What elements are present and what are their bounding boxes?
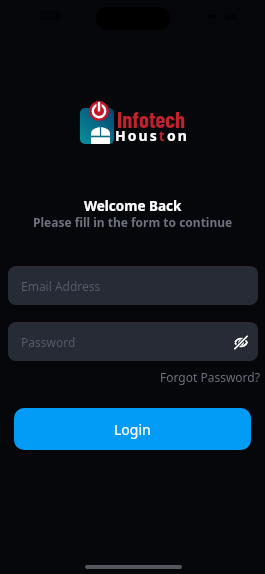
staticText: Email Address (21, 278, 101, 294)
button[interactable]: Password (8, 322, 258, 361)
staticText: Password (21, 334, 76, 350)
staticText: Forgot Password? (160, 369, 260, 385)
button[interactable]: Forgot Password? (160, 369, 260, 385)
staticText: Infotech (117, 105, 186, 132)
staticText: Login (114, 420, 151, 439)
staticText: Welcome Back (84, 197, 182, 215)
staticText: Houston (115, 126, 189, 145)
staticText: Please fill in the form to continue (33, 214, 233, 230)
button[interactable]: Email Address (8, 266, 258, 305)
button[interactable]: Show password (228, 329, 254, 355)
button[interactable]: Login (14, 408, 251, 450)
